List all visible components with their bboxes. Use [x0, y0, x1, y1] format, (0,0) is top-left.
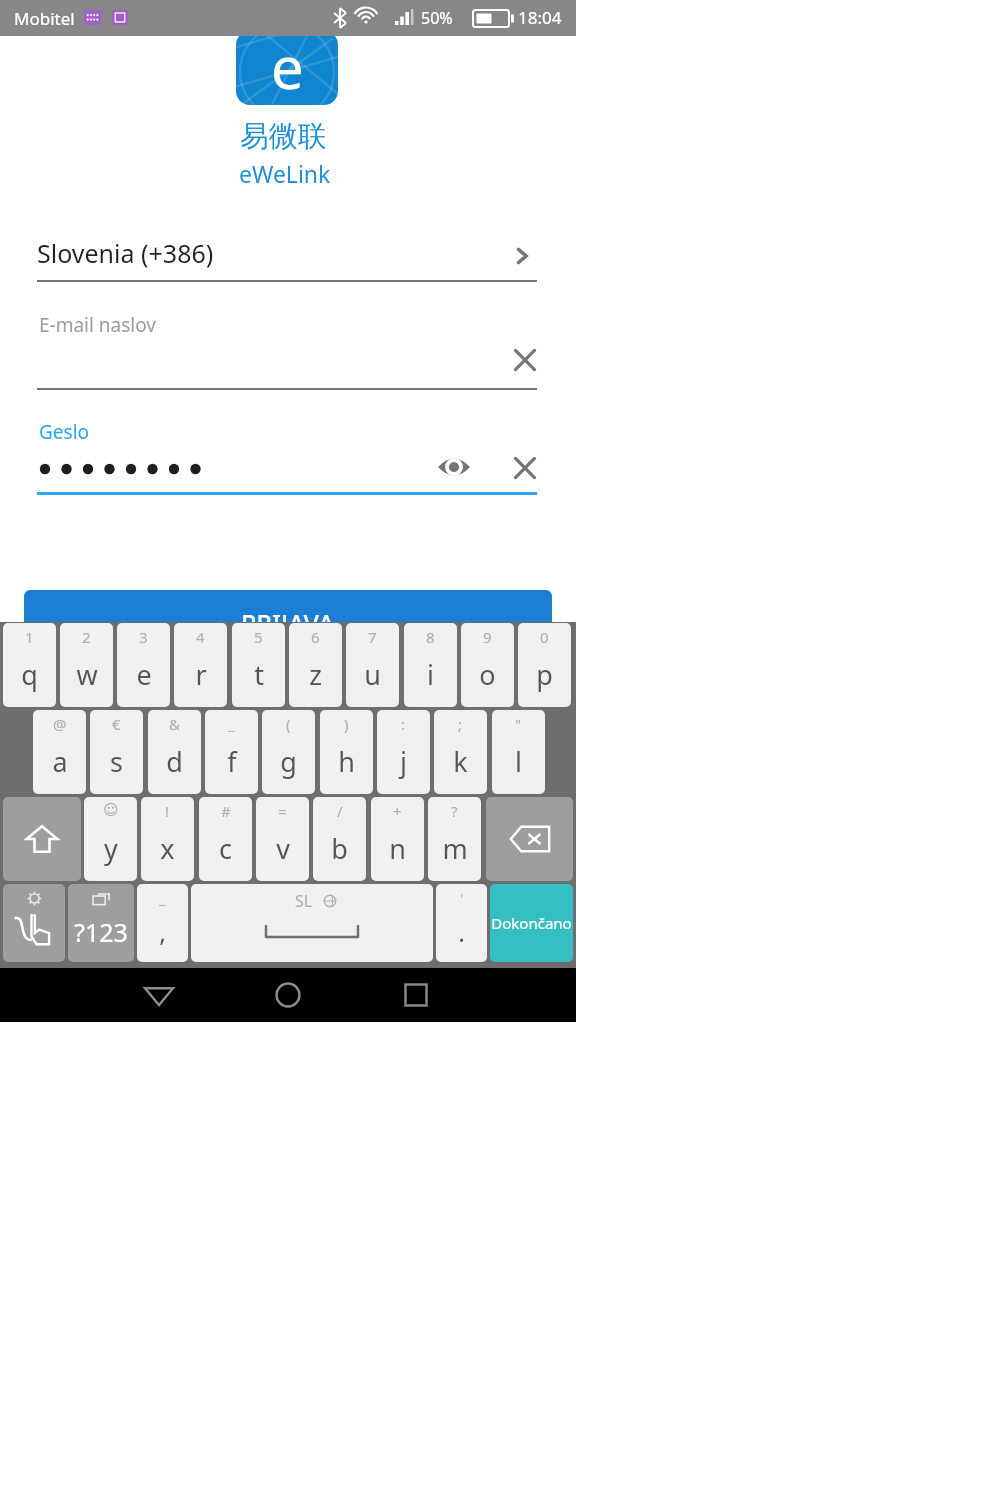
staticText: Geslo: [39, 419, 90, 445]
staticText: s: [110, 743, 123, 780]
staticText: k: [453, 743, 468, 780]
staticText: 9: [483, 627, 492, 647]
button[interactable]: ?: [428, 797, 481, 881]
staticText: z: [309, 656, 322, 693]
staticText: (: [286, 714, 291, 734]
staticText: 8: [426, 627, 435, 647]
button[interactable]: Back: [130, 968, 188, 1022]
button[interactable]: ;: [434, 710, 487, 794]
staticText: ,: [159, 915, 166, 949]
staticText: ': [460, 888, 464, 908]
staticText: 4: [196, 627, 205, 647]
button[interactable]: Slovenia (+386): [37, 230, 537, 282]
button[interactable]: Home: [259, 968, 317, 1022]
staticText: c: [219, 830, 232, 867]
staticText: 0: [540, 627, 549, 647]
staticText: i: [427, 656, 434, 693]
staticText: b: [331, 830, 348, 867]
staticText: /: [337, 801, 343, 821]
staticText: :: [401, 714, 406, 734]
button[interactable]: ☺: [84, 797, 137, 881]
button[interactable]: 5: [232, 623, 285, 707]
button[interactable]: (: [262, 710, 315, 794]
staticText: +: [393, 801, 402, 821]
button[interactable]: =: [256, 797, 309, 881]
button[interactable]: [37, 446, 537, 496]
button[interactable]: Space: [191, 884, 433, 962]
staticText: Mobitel: [14, 7, 75, 30]
button[interactable]: €: [90, 710, 143, 794]
staticText: y: [104, 830, 118, 867]
staticText: ): [344, 714, 349, 734]
staticText: x: [160, 830, 175, 867]
button[interactable]: 9: [461, 623, 514, 707]
button[interactable]: 7: [346, 623, 399, 707]
button[interactable]: 2: [60, 623, 113, 707]
staticText: &: [169, 714, 180, 734]
staticText: ": [515, 714, 522, 734]
button[interactable]: Clear e-mail: [508, 343, 542, 377]
staticText: E-mail naslov: [39, 312, 157, 338]
button[interactable]: Dokončano: [490, 884, 573, 962]
staticText: PRIJAVA: [241, 606, 335, 640]
staticText: t: [254, 656, 264, 693]
staticText: !: [165, 801, 170, 821]
staticText: 易微联: [240, 118, 327, 155]
staticText: h: [338, 743, 355, 780]
button[interactable]: 8: [404, 623, 457, 707]
staticText: Dokončano: [491, 913, 572, 933]
button[interactable]: Shift: [3, 797, 81, 881]
staticText: e: [271, 31, 304, 101]
staticText: f: [227, 743, 237, 780]
button[interactable]: [37, 338, 537, 388]
button[interactable]: _: [137, 884, 188, 962]
button[interactable]: ): [320, 710, 373, 794]
staticText: w: [76, 656, 98, 693]
staticText: v: [276, 830, 290, 867]
button[interactable]: 1: [3, 623, 56, 707]
button[interactable]: Show password: [436, 451, 472, 483]
staticText: ;: [458, 714, 463, 734]
button[interactable]: /: [313, 797, 366, 881]
button[interactable]: 6: [289, 623, 342, 707]
button[interactable]: Backspace: [486, 797, 573, 881]
staticText: 50%: [421, 7, 453, 29]
staticText: Slovenia (+386): [37, 236, 214, 270]
staticText: .: [458, 915, 465, 949]
button[interactable]: PRIJAVA: [24, 590, 552, 656]
button[interactable]: 4: [174, 623, 227, 707]
button[interactable]: ': [436, 884, 487, 962]
staticText: 7: [368, 627, 377, 647]
staticText: n: [389, 830, 406, 867]
button[interactable]: @: [33, 710, 86, 794]
staticText: #: [221, 801, 231, 821]
button[interactable]: Clear password: [508, 451, 542, 485]
staticText: ☺: [103, 801, 119, 818]
staticText: 6: [311, 627, 320, 647]
staticText: ?: [451, 801, 458, 821]
staticText: r: [195, 656, 207, 693]
button[interactable]: Handwriting input: [3, 884, 65, 962]
staticText: e: [136, 656, 152, 693]
staticText: a: [52, 743, 68, 780]
staticText: @: [53, 714, 67, 734]
staticText: €: [112, 714, 121, 734]
button[interactable]: ?123: [68, 884, 134, 962]
staticText: 2: [82, 627, 91, 647]
button[interactable]: &: [148, 710, 201, 794]
button[interactable]: 0: [518, 623, 571, 707]
button[interactable]: !: [141, 797, 194, 881]
staticText: 1: [25, 627, 34, 647]
button[interactable]: :: [377, 710, 430, 794]
button[interactable]: Recent apps: [387, 968, 445, 1022]
staticText: m: [442, 830, 468, 867]
other: Choose country: [507, 241, 537, 271]
staticText: l: [515, 743, 522, 780]
staticText: 3: [139, 627, 148, 647]
staticText: eWeLink: [239, 158, 331, 189]
button[interactable]: ": [492, 710, 545, 794]
button[interactable]: _: [205, 710, 258, 794]
button[interactable]: +: [371, 797, 424, 881]
button[interactable]: 3: [117, 623, 170, 707]
button[interactable]: #: [199, 797, 252, 881]
